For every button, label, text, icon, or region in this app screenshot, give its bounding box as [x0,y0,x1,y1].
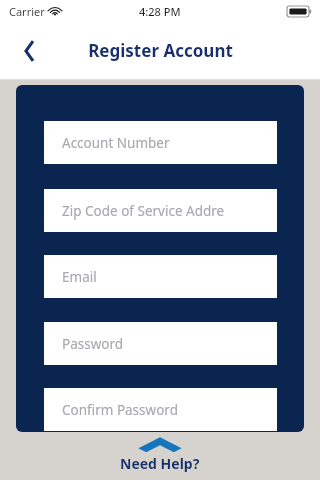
button[interactable]: Email [44,255,277,298]
button[interactable]: Zip Code of Service Addre [44,189,277,232]
staticText: Email [62,268,97,286]
button[interactable]: Account Number [44,121,277,164]
staticText: Zip Code of Service Addre [62,202,225,220]
staticText: Confirm Password [62,401,178,419]
staticText: Carrier [9,4,45,19]
staticText: Need Help? [120,454,200,473]
staticText: Password [62,335,124,353]
button[interactable]: Confirm Password [44,388,277,431]
staticText: 4:28 PM [139,4,181,19]
staticText: Account Number [62,134,170,152]
staticText: Register Account [88,39,233,62]
button[interactable]: Password [44,322,277,365]
button[interactable]: Need Help? [120,436,200,473]
button[interactable]: Back [10,33,46,69]
